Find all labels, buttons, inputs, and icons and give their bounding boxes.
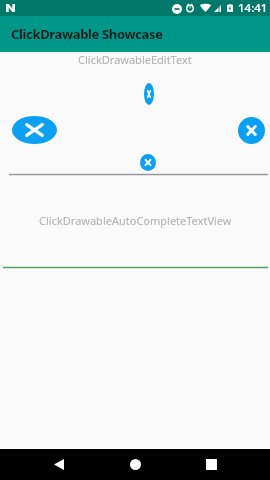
button[interactable]: Clear text xyxy=(238,117,265,144)
button[interactable]: Clear text xyxy=(144,83,154,105)
staticText: ClickDrawable Showcase xyxy=(11,25,163,43)
button[interactable]: Home xyxy=(117,452,153,477)
button[interactable]: Back xyxy=(41,452,77,477)
staticText: ClickDrawableEditText xyxy=(78,52,192,67)
button[interactable]: Clear text xyxy=(140,154,156,171)
button[interactable]: Recent apps xyxy=(193,452,229,477)
button[interactable]: Clear text xyxy=(12,116,57,144)
staticText: 14:41 xyxy=(238,0,268,16)
staticText: ClickDrawableAutoCompleteTextView xyxy=(39,213,232,228)
